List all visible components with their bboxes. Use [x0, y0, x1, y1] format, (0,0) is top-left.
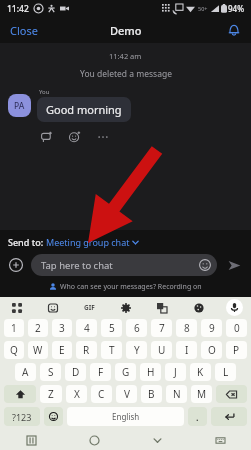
staticText: 4 [84, 321, 90, 335]
staticText: S [48, 365, 54, 379]
staticText: J [174, 365, 177, 379]
button[interactable]: R [76, 341, 97, 359]
staticText: 2 [35, 321, 41, 335]
button[interactable]: X [66, 385, 87, 403]
staticText: Who can see your messages? Recording on [60, 282, 202, 292]
staticText: U [158, 343, 166, 357]
button[interactable]: O [201, 341, 222, 359]
staticText: 1 [11, 321, 17, 335]
button[interactable]: Tap here to chat [31, 254, 217, 276]
staticText: 50+ [198, 5, 208, 12]
button[interactable]: Settings [117, 299, 134, 316]
button[interactable]: Hide keyboard [148, 431, 166, 449]
button[interactable]: . [188, 407, 207, 426]
staticText: F [98, 365, 104, 379]
button[interactable]: V [116, 385, 137, 403]
button[interactable]: Q [4, 341, 24, 359]
button[interactable]: Add reaction [65, 127, 85, 147]
staticText: Q [10, 343, 18, 357]
button[interactable]: C [91, 385, 112, 403]
button[interactable]: Notifications [223, 19, 245, 41]
button[interactable]: A [15, 363, 36, 381]
button[interactable]: T [101, 341, 122, 359]
button[interactable]: Enter [211, 407, 247, 426]
staticText: 11:42 [7, 3, 29, 15]
button[interactable]: J [165, 363, 186, 381]
staticText: ?123 [12, 411, 32, 423]
button[interactable]: Home [85, 431, 103, 449]
button[interactable]: 4 [76, 319, 97, 337]
button[interactable]: H [140, 363, 161, 381]
button[interactable]: Who can see your messages? Recording on [0, 282, 251, 292]
button[interactable]: 0 [226, 319, 247, 337]
staticText: T [109, 343, 115, 357]
staticText: O [208, 343, 216, 357]
button[interactable]: English [67, 407, 184, 426]
button[interactable]: More options [93, 127, 113, 147]
button[interactable]: 6 [126, 319, 147, 337]
button[interactable]: B [141, 385, 162, 403]
button[interactable]: Emoji [44, 407, 63, 426]
button[interactable]: Reply [37, 127, 57, 147]
button[interactable]: W [28, 341, 48, 359]
staticText: . [196, 411, 199, 423]
staticText: L [223, 365, 229, 379]
button[interactable]: L [215, 363, 236, 381]
button[interactable]: 3 [52, 319, 72, 337]
staticText: You [39, 88, 50, 96]
button[interactable]: Add attachment [6, 255, 26, 275]
staticText: N [173, 387, 181, 401]
staticText: 9 [209, 321, 215, 335]
button[interactable]: Good morning [37, 97, 131, 122]
staticText: Tap here to chat [41, 259, 199, 272]
button[interactable]: Z [40, 385, 62, 403]
button[interactable]: M [191, 385, 212, 403]
staticText: 94% [228, 3, 244, 14]
button[interactable]: Y [126, 341, 147, 359]
button[interactable]: ?123 [4, 407, 40, 426]
button[interactable]: P [226, 341, 247, 359]
button[interactable]: GIF [81, 299, 98, 316]
button[interactable]: 9 [201, 319, 222, 337]
button[interactable]: 1 [4, 319, 24, 337]
button[interactable]: Themes [190, 299, 207, 316]
button[interactable]: Send [223, 254, 245, 276]
staticText: I [185, 343, 189, 357]
button[interactable]: F [90, 363, 111, 381]
button[interactable]: Apps [8, 299, 25, 316]
staticText: C [98, 387, 105, 401]
button[interactable]: Voice input [226, 299, 243, 316]
button[interactable]: Recents [22, 431, 40, 449]
button[interactable]: PA [8, 94, 31, 117]
button[interactable]: 5 [101, 319, 122, 337]
button[interactable]: E [52, 341, 72, 359]
staticText: 6 [134, 321, 140, 335]
button[interactable]: Switch keyboard [211, 431, 229, 449]
button[interactable]: N [166, 385, 187, 403]
button[interactable]: Shift [4, 385, 36, 403]
button[interactable]: Send to: [8, 236, 251, 248]
button[interactable]: Close [4, 19, 44, 42]
staticText: V [124, 387, 130, 401]
staticText: 5 [109, 321, 115, 335]
button[interactable]: K [190, 363, 211, 381]
staticText: X [74, 387, 80, 401]
button[interactable]: Translate [153, 299, 170, 316]
staticText: Meeting group chat [46, 236, 130, 248]
button[interactable]: D [65, 363, 86, 381]
button[interactable]: 7 [151, 319, 172, 337]
button[interactable]: Stickers [44, 299, 61, 316]
staticText: M [197, 387, 207, 401]
staticText: K [197, 365, 204, 379]
button[interactable]: G [115, 363, 136, 381]
staticText: 0 [234, 321, 240, 335]
staticText: Demo [110, 23, 142, 38]
staticText: GIF [84, 303, 95, 312]
button[interactable]: U [151, 341, 172, 359]
button[interactable]: Backspace [216, 385, 247, 403]
button[interactable]: S [40, 363, 61, 381]
button[interactable]: I [176, 341, 197, 359]
button[interactable]: 8 [176, 319, 197, 337]
staticText: B [148, 387, 155, 401]
button[interactable]: 2 [28, 319, 48, 337]
